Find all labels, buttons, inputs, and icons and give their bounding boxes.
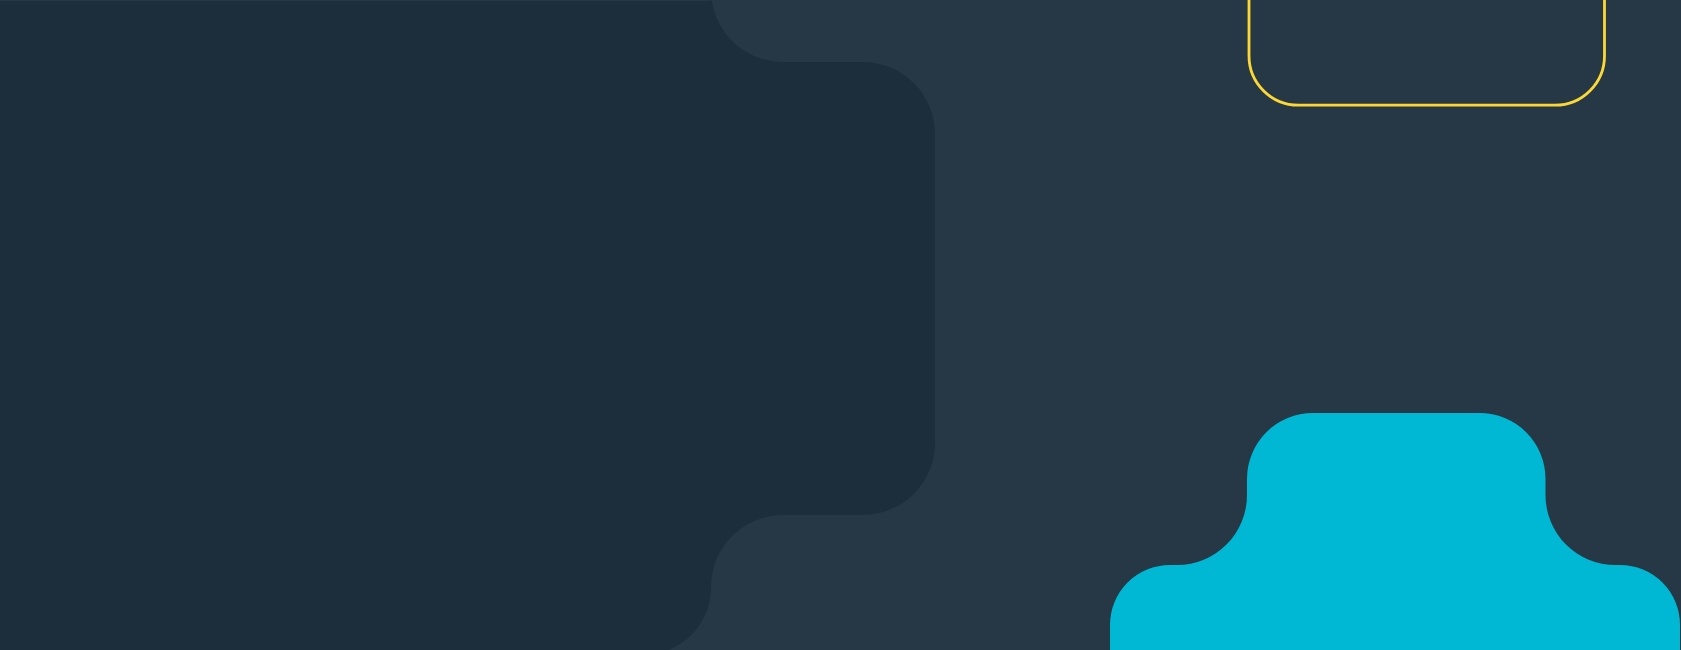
button[interactable]: New task <box>1247 413 1546 565</box>
button[interactable]: Filter <box>1249 0 1605 105</box>
button[interactable]: Bottom action bar <box>1110 565 1680 650</box>
